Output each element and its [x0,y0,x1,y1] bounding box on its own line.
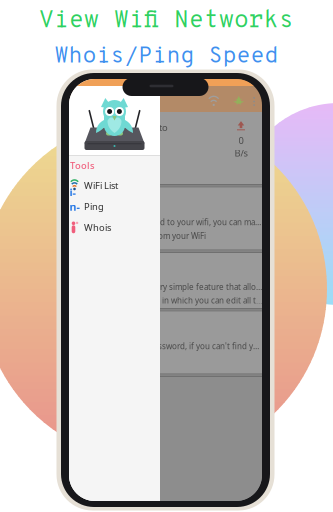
staticText: You are connected to [77,121,168,133]
staticText: Whois [84,221,111,234]
staticText: and you can block it from your WiFi [76,230,206,241]
staticText: redSSID [77,137,112,150]
staticText: Router settings is a very simple feature… [76,282,262,292]
button[interactable]: WiFi List [69,175,160,196]
staticText: Who is on my WiFi? [76,196,159,209]
staticText: B/s [234,147,247,159]
button[interactable]: ROUTER INFO [77,162,155,179]
button[interactable]: ing [69,196,160,217]
staticText: View Wifi Networks [39,6,294,36]
staticText: ROUTER INFO [86,164,146,177]
button[interactable]: Whois [69,217,160,238]
staticText: Every device connected to your wifi, you… [76,217,262,227]
staticText: Find router default password, if you can… [76,341,262,351]
staticText: WiFi List [84,179,118,192]
staticText: ing [69,185,79,228]
staticText: Tools [70,159,95,172]
staticText: 0 [238,134,243,147]
staticText: to open the web page in which you can ed… [76,295,262,306]
staticText: Whois/Ping Speed [54,42,278,71]
staticText: Ping [84,200,104,213]
